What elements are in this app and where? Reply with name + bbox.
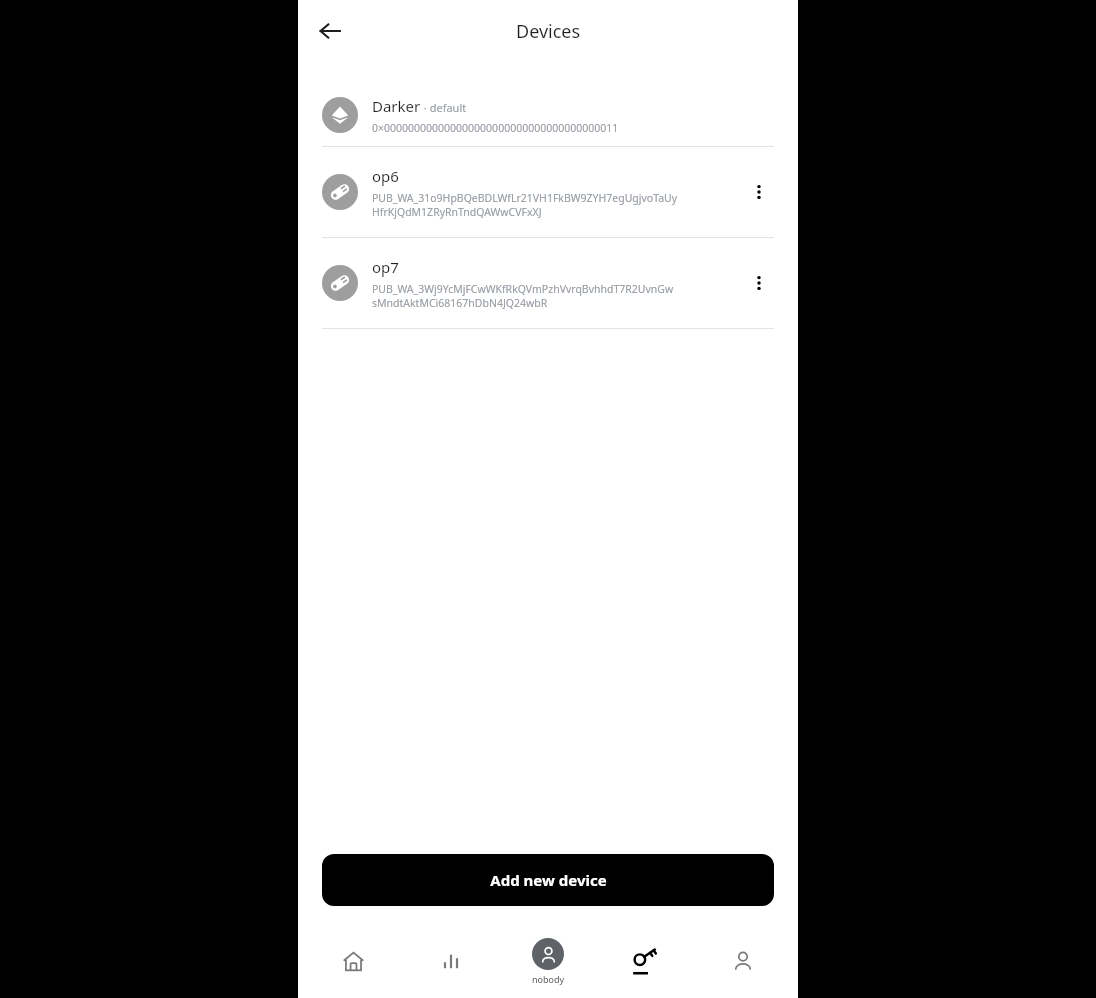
staticText: op6 [372, 166, 399, 186]
button[interactable]: op7 [298, 238, 798, 328]
button[interactable]: nobody [517, 930, 579, 992]
button[interactable]: Keys [615, 930, 677, 992]
staticText: 0×00000000000000000000000000000000000001… [372, 121, 619, 135]
staticText: PUB_WA_3Wj9YcMjFCwWKfRkQVmPzhVvrqBvhhdT7… [372, 282, 674, 296]
staticText: PUB_WA_31o9HpBQeBDLWfLr21VH1FkBW9ZYH7egU… [372, 191, 678, 205]
staticText: nobody [532, 973, 565, 985]
button[interactable]: op6 [298, 147, 798, 237]
button[interactable]: Account [712, 930, 774, 992]
staticText: Darker [372, 96, 421, 116]
staticText: HfrKjQdM1ZRyRnTndQAWwCVFxXJ [372, 205, 542, 219]
button[interactable]: Back [308, 9, 352, 53]
staticText: sMndtAktMCi68167hDbN4JQ24wbR [372, 296, 548, 310]
staticText: Devices [516, 19, 581, 44]
button[interactable]: Home [322, 930, 384, 992]
button[interactable]: More options [744, 177, 774, 207]
button[interactable]: More options [744, 268, 774, 298]
button[interactable]: Darker [298, 84, 798, 146]
staticText: Add new device [490, 870, 607, 890]
staticText: op7 [372, 257, 399, 277]
button[interactable]: Statistics [420, 930, 482, 992]
button[interactable]: Add new device [322, 854, 774, 906]
staticText: · default [421, 100, 467, 115]
